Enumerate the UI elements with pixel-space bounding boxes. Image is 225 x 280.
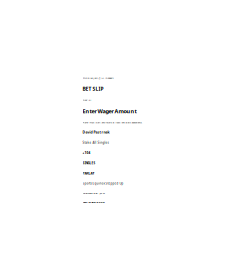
staticText: Clear All [82, 98, 91, 101]
staticText: SINGLES [82, 161, 95, 165]
staticText: Player must start and record at least on… [82, 121, 142, 124]
staticText: +104 [82, 151, 90, 155]
staticText: Sports Equinox Stepped Up [82, 181, 123, 185]
staticText: Enter Wager Amount [82, 107, 136, 115]
staticText: David Pastrnak [82, 130, 109, 135]
staticText: TOR Blue Jays @ LA Dodgers [82, 76, 113, 80]
staticText: +25% PARLAY BOOST [82, 201, 104, 204]
staticText: PARLAY [82, 171, 94, 176]
staticText: Stake All Singles [82, 141, 108, 145]
staticText: BET SLIP [82, 86, 103, 92]
staticText: Minimum Bet: $0.10 [82, 191, 104, 195]
